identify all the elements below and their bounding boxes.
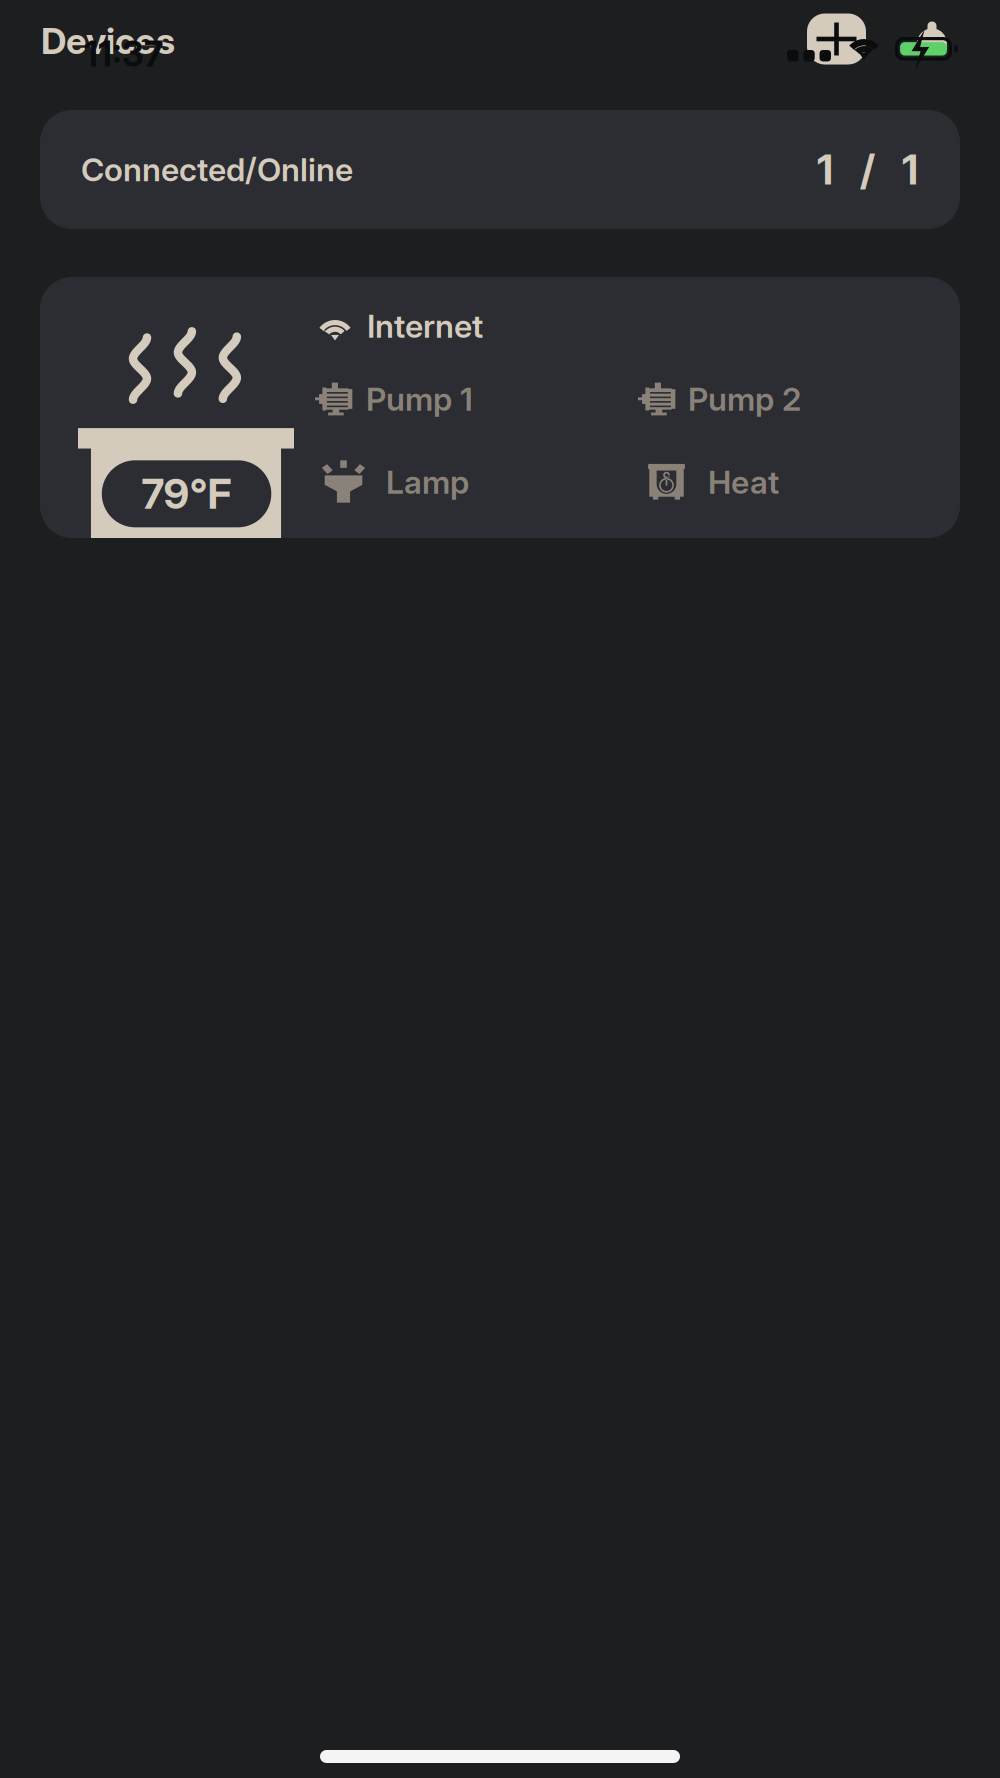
staticText: Heat — [708, 463, 779, 501]
staticText: Lamp — [386, 463, 469, 501]
staticText: 11:37 — [84, 33, 163, 75]
staticText: Pump 2 — [688, 380, 801, 418]
button[interactable]: Lamp — [312, 454, 635, 510]
staticText: 1 / 1 — [817, 144, 918, 194]
button[interactable]: Pump 2 — [635, 371, 960, 427]
staticText: Devices — [41, 19, 175, 63]
button[interactable]: Add device — [807, 13, 866, 64]
staticText: Internet — [367, 307, 483, 345]
staticText: Pump 1 — [366, 380, 473, 418]
staticText: Connected/Online — [81, 150, 353, 189]
button[interactable]: Heat — [635, 454, 960, 510]
staticText: 79°F — [141, 469, 231, 519]
button[interactable]: Internet — [312, 298, 960, 354]
button[interactable]: Pump 1 — [312, 371, 635, 427]
button[interactable]: Notifications — [912, 13, 952, 64]
